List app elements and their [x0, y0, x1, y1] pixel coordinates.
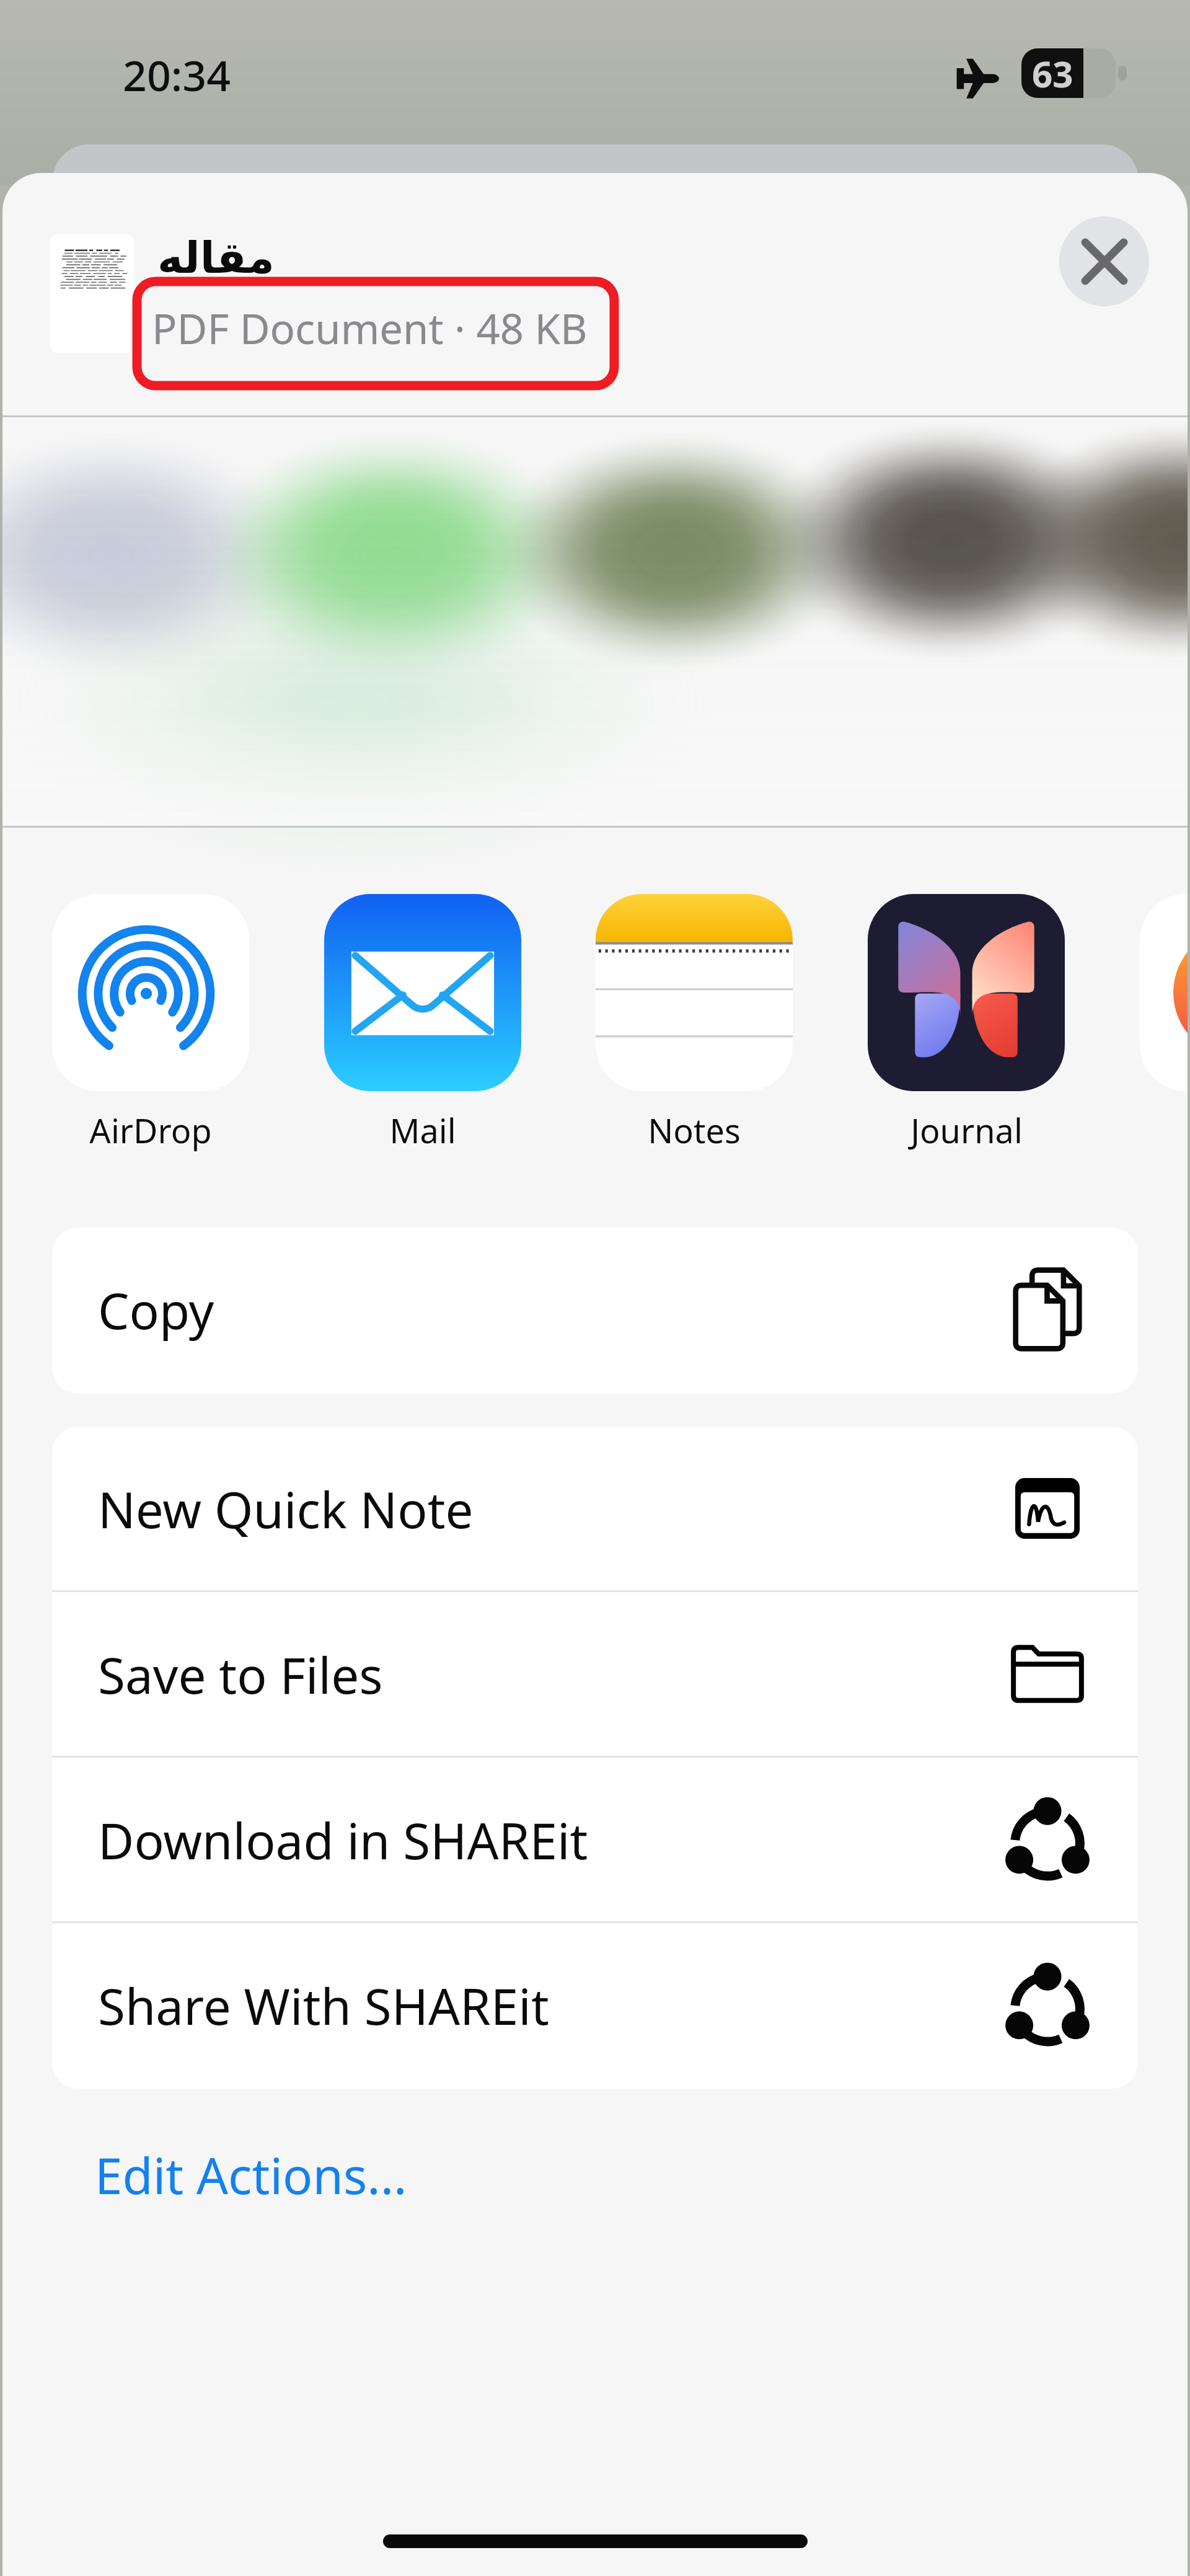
button[interactable]: New Quick Note [52, 1427, 1138, 1590]
staticText: Notes [648, 1107, 741, 1153]
button[interactable]: Download in SHAREit [52, 1758, 1138, 1921]
button[interactable]: AirDrop [52, 894, 249, 1153]
staticText: New Quick Note [98, 1475, 474, 1543]
button[interactable]: Mail [324, 894, 521, 1153]
staticText: Mail [389, 1107, 456, 1153]
staticText: Journal [910, 1107, 1023, 1153]
button[interactable]: Journal [868, 894, 1065, 1153]
button[interactable]: Save to Files [52, 1592, 1138, 1756]
staticText: 63 [1032, 49, 1073, 98]
staticText: PDF Document · 48 KB [152, 299, 588, 356]
button[interactable]: Close [1059, 216, 1149, 306]
button[interactable]: Edit Actions... [84, 2131, 418, 2218]
staticText: Save to Files [98, 1640, 383, 1708]
staticText: Share With SHAREit [98, 1972, 549, 2039]
staticText: Copy [98, 1276, 214, 1343]
staticText: Download in SHAREit [98, 1806, 588, 1874]
button[interactable]: Notes [596, 894, 793, 1153]
button[interactable]: Fre [1140, 894, 1188, 1153]
staticText: AirDrop [89, 1107, 212, 1153]
staticText: مقاله [157, 232, 275, 283]
button[interactable]: Share With SHAREit [52, 1923, 1138, 2087]
staticText: 20:34 [123, 46, 231, 104]
button[interactable]: Copy [52, 1228, 1138, 1391]
staticText: Edit Actions... [95, 2141, 407, 2208]
